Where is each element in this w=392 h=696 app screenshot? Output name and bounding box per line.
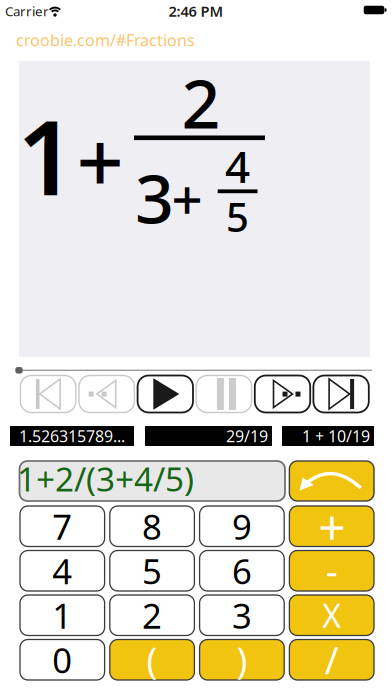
staticText: Carrier [5,2,49,20]
button[interactable]: Step back [79,375,134,412]
staticText: 2 [142,592,162,638]
button[interactable]: Position [15,367,23,374]
staticText: 4 [52,548,72,594]
button[interactable]: + [289,506,374,546]
button[interactable]: 8 [110,506,194,546]
button[interactable]: Play [138,375,193,412]
staticText: 1 [17,87,76,224]
staticText: 1+2/(3+4/5) [17,456,194,501]
button[interactable]: 1 [20,595,105,635]
button[interactable]: 7 [20,506,105,546]
button[interactable]: croobie.com/#Fractions [16,29,376,51]
button[interactable]: ( [110,639,194,680]
staticText: 5 [142,548,162,594]
button[interactable]: 9 [200,506,284,546]
staticText: 5 [226,190,249,243]
staticText: 8 [142,503,162,549]
staticText: 1 [52,592,72,638]
button[interactable]: Undo [289,461,374,501]
staticText: 7 [52,503,72,549]
staticText: 1 + 10/19 [302,425,370,447]
button[interactable]: Step forward [255,375,310,412]
button[interactable]: / [289,639,374,680]
staticText: 29/19 [226,425,268,447]
button[interactable]: 6 [200,550,284,591]
staticText: + [76,106,123,215]
button[interactable]: 0 [20,639,105,680]
staticText: X [322,594,341,636]
staticText: / [325,635,339,685]
button[interactable]: Skip to end [313,375,369,412]
staticText: ( [147,636,158,684]
staticText: 9 [232,503,252,549]
staticText: ) [236,636,247,684]
staticText: 6 [232,548,252,594]
staticText: + [318,494,345,558]
staticText: croobie.com/#Fractions [16,29,195,51]
button[interactable]: 5 [110,550,194,591]
button[interactable]: 4 [20,550,105,591]
staticText: 3 [135,152,174,242]
staticText: 1.526315789... [19,425,125,447]
button[interactable]: X [289,595,374,635]
staticText: 4 [225,137,250,195]
staticText: - [326,546,338,596]
button[interactable]: - [289,550,374,591]
staticText: 2 [181,57,220,147]
staticText: + [171,162,202,235]
button[interactable]: 2 [110,595,194,635]
button[interactable]: ) [200,639,284,680]
staticText: 2:46 PM [168,1,223,21]
button[interactable]: Pause [196,375,252,412]
staticText: 0 [52,637,72,683]
button[interactable]: Skip to start [20,375,76,412]
button[interactable]: 3 [200,595,284,635]
staticText: 3 [232,592,252,638]
